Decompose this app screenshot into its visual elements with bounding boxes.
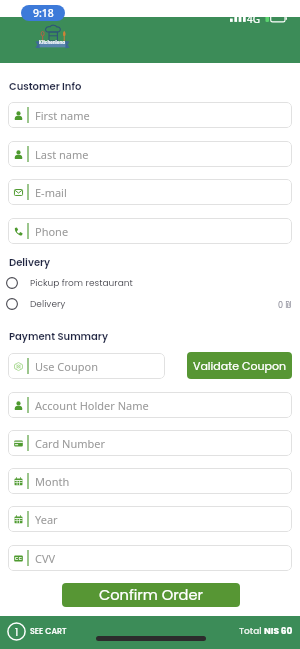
staticText: Customer Info: [9, 79, 82, 93]
button[interactable]: E-mail: [8, 179, 292, 205]
staticText: Delivery: [9, 255, 51, 269]
button[interactable]: Phone: [8, 218, 292, 244]
button[interactable]: Month: [8, 468, 292, 494]
button[interactable]: Use Coupon: [8, 353, 165, 379]
button[interactable]: CVV: [8, 545, 292, 571]
staticText: Total: [239, 625, 264, 638]
staticText: 1: [15, 625, 19, 639]
staticText: Month: [35, 474, 70, 489]
staticText: Account Holder Name: [35, 398, 149, 413]
staticText: Last name: [35, 147, 89, 162]
staticText: Kitchenlena: [39, 40, 66, 46]
button[interactable]: Validate Coupon: [187, 352, 292, 379]
button[interactable]: Pickup from restaurant: [6, 273, 300, 293]
staticText: Use Coupon: [35, 359, 98, 374]
staticText: Validate Coupon: [193, 358, 287, 373]
staticText: First name: [35, 108, 90, 123]
staticText: Phone: [35, 224, 69, 239]
button[interactable]: Account Holder Name: [8, 392, 292, 418]
staticText: Year: [35, 512, 58, 527]
staticText: 4G: [247, 12, 260, 26]
button[interactable]: First name: [8, 102, 292, 128]
staticText: SEE CART: [30, 626, 67, 637]
staticText: CVV: [35, 551, 56, 566]
staticText: Delivery: [30, 298, 66, 311]
staticText: Card Number: [35, 436, 106, 451]
button[interactable]: Card Number: [8, 430, 292, 456]
button[interactable]: 1: [7, 621, 67, 642]
staticText: Pickup from restaurant: [30, 277, 133, 290]
button[interactable]: Last name: [8, 141, 292, 167]
button[interactable]: Year: [8, 506, 292, 532]
staticText: Confirm Order: [99, 585, 203, 605]
button[interactable]: Confirm Order: [62, 583, 240, 607]
staticText: Payment Summary: [9, 329, 108, 343]
staticText: 0 ₪: [278, 299, 292, 310]
staticText: 9:18: [33, 6, 54, 20]
staticText: NIS 60: [264, 625, 293, 638]
staticText: E-mail: [35, 185, 67, 200]
button[interactable]: Delivery: [6, 294, 300, 314]
